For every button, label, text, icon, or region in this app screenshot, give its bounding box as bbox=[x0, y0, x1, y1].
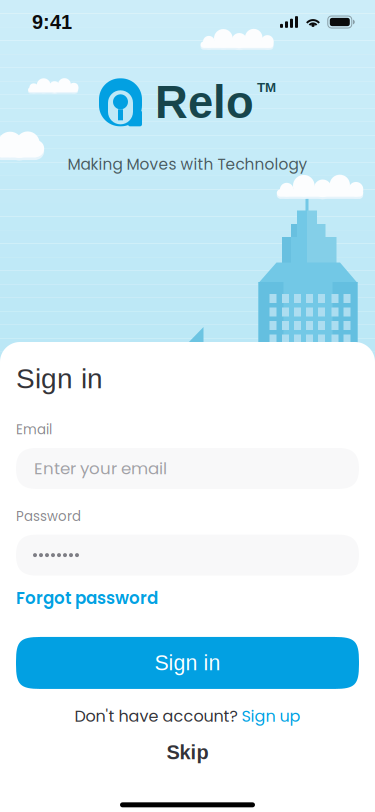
staticText: Skip bbox=[166, 741, 208, 763]
staticText: Relo bbox=[155, 77, 254, 128]
staticText: Sign up bbox=[241, 705, 300, 727]
staticText: Sign in bbox=[16, 363, 103, 394]
staticText: Forgot password bbox=[16, 587, 158, 610]
button[interactable]: Skip bbox=[16, 735, 359, 769]
staticText: Sign in bbox=[154, 651, 220, 675]
staticText: TM bbox=[257, 80, 276, 95]
staticText: Email bbox=[16, 420, 52, 439]
button[interactable]: Forgot password bbox=[16, 587, 158, 610]
staticText: Enter your email bbox=[34, 457, 167, 480]
staticText: Password bbox=[16, 507, 81, 526]
staticText: Don't have account? bbox=[74, 705, 237, 727]
staticText: Making Moves with Technology bbox=[67, 154, 307, 175]
button[interactable]: Sign up bbox=[241, 705, 300, 727]
button[interactable]: Sign in bbox=[16, 637, 359, 689]
staticText: 9:41 bbox=[32, 11, 72, 33]
